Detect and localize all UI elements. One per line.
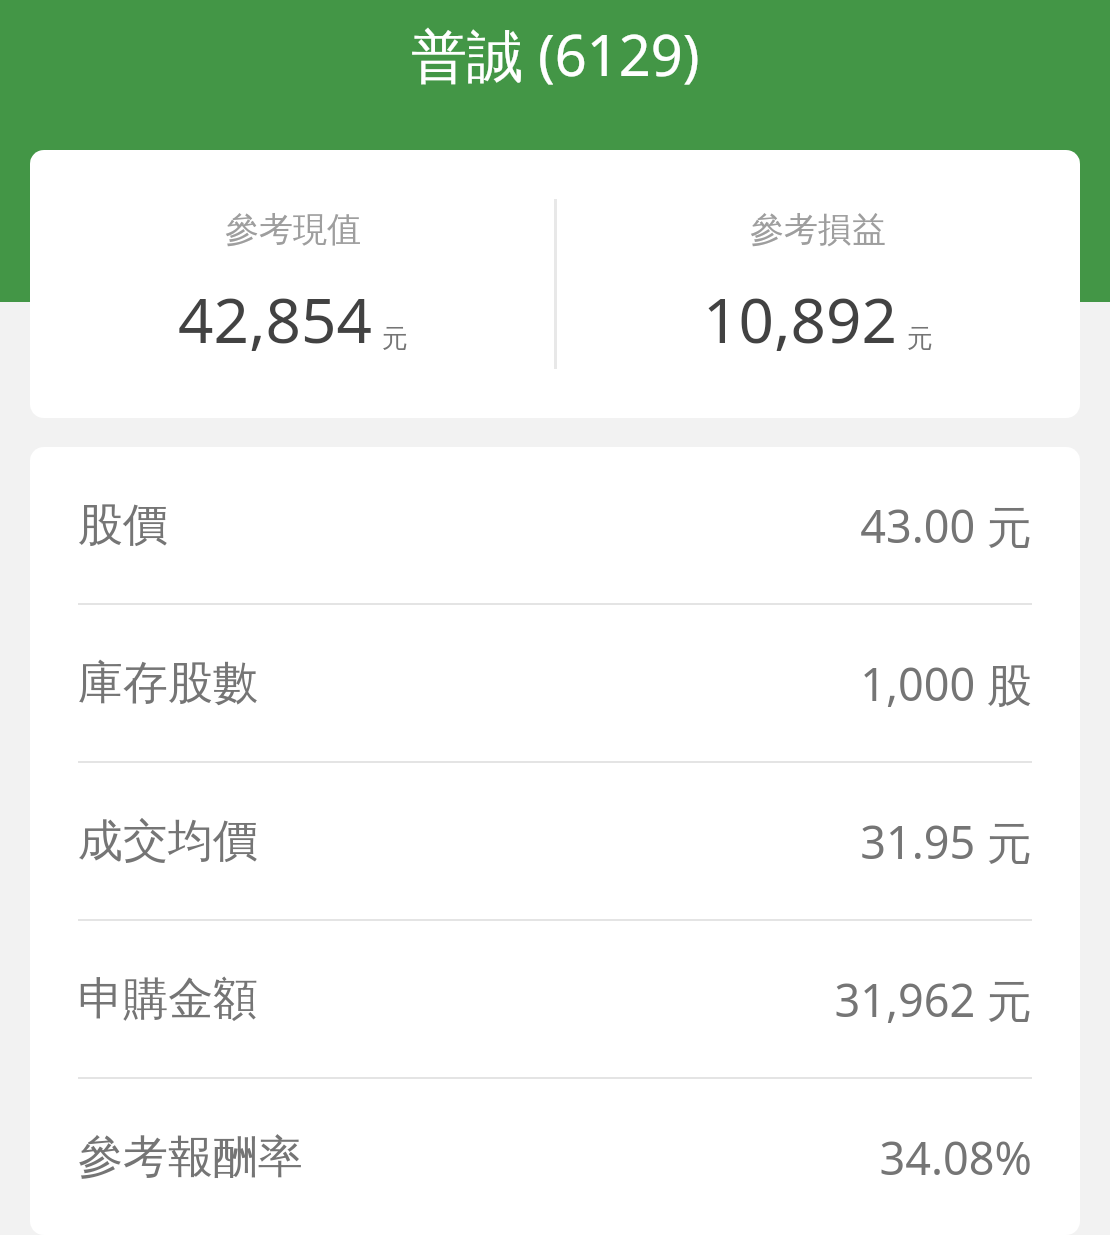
staticText: 參考現值 (225, 208, 361, 251)
staticText: 成交均價 (78, 813, 258, 870)
button[interactable]: 成交均價 (30, 763, 1080, 919)
button[interactable]: 參考現值 (30, 150, 1080, 418)
staticText: 庫存股數 (78, 655, 258, 712)
staticText: 參考報酬率 (78, 1129, 303, 1186)
staticText: 42,854 (178, 277, 372, 361)
staticText: 參考損益 (750, 208, 886, 251)
staticText: 31,962 元 (834, 969, 1032, 1030)
staticText: 43.00 元 (860, 495, 1032, 556)
button[interactable]: 申購金額 (30, 921, 1080, 1077)
staticText: 1,000 股 (860, 653, 1032, 714)
button[interactable]: 庫存股數 (30, 605, 1080, 761)
button[interactable]: 股價 (30, 447, 1080, 603)
staticText: 申購金額 (78, 971, 258, 1028)
staticText: 34.08% (879, 1127, 1032, 1188)
staticText: 31.95 元 (860, 811, 1032, 872)
staticText: 元 (382, 322, 408, 355)
button[interactable]: 參考報酬率 (30, 1079, 1080, 1235)
staticText: 股價 (78, 497, 168, 554)
staticText: 元 (907, 322, 933, 355)
staticText: 普誠 (6129) (411, 16, 700, 92)
staticText: 10,892 (703, 277, 897, 361)
